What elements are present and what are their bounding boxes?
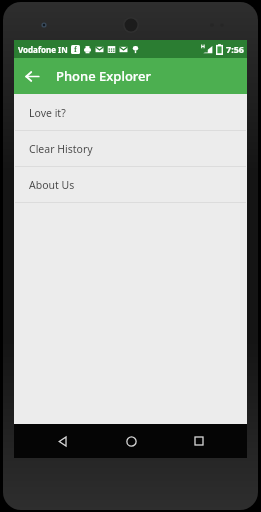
button[interactable]: Recent apps (179, 424, 219, 458)
staticText: Love it? (29, 106, 66, 120)
staticText: Phone Explorer (56, 67, 152, 85)
button[interactable]: Love it? (14, 95, 247, 130)
button[interactable]: Back (14, 58, 50, 94)
staticText: 7:56 (226, 43, 244, 55)
button[interactable]: Clear History (14, 131, 247, 166)
staticText: About Us (29, 178, 75, 192)
staticText: Vodafone IN (18, 44, 68, 55)
button[interactable]: Home (111, 424, 151, 458)
staticText: Clear History (29, 142, 93, 156)
button[interactable]: Back (42, 424, 82, 458)
button[interactable]: About Us (14, 167, 247, 202)
staticText: f (74, 45, 77, 54)
